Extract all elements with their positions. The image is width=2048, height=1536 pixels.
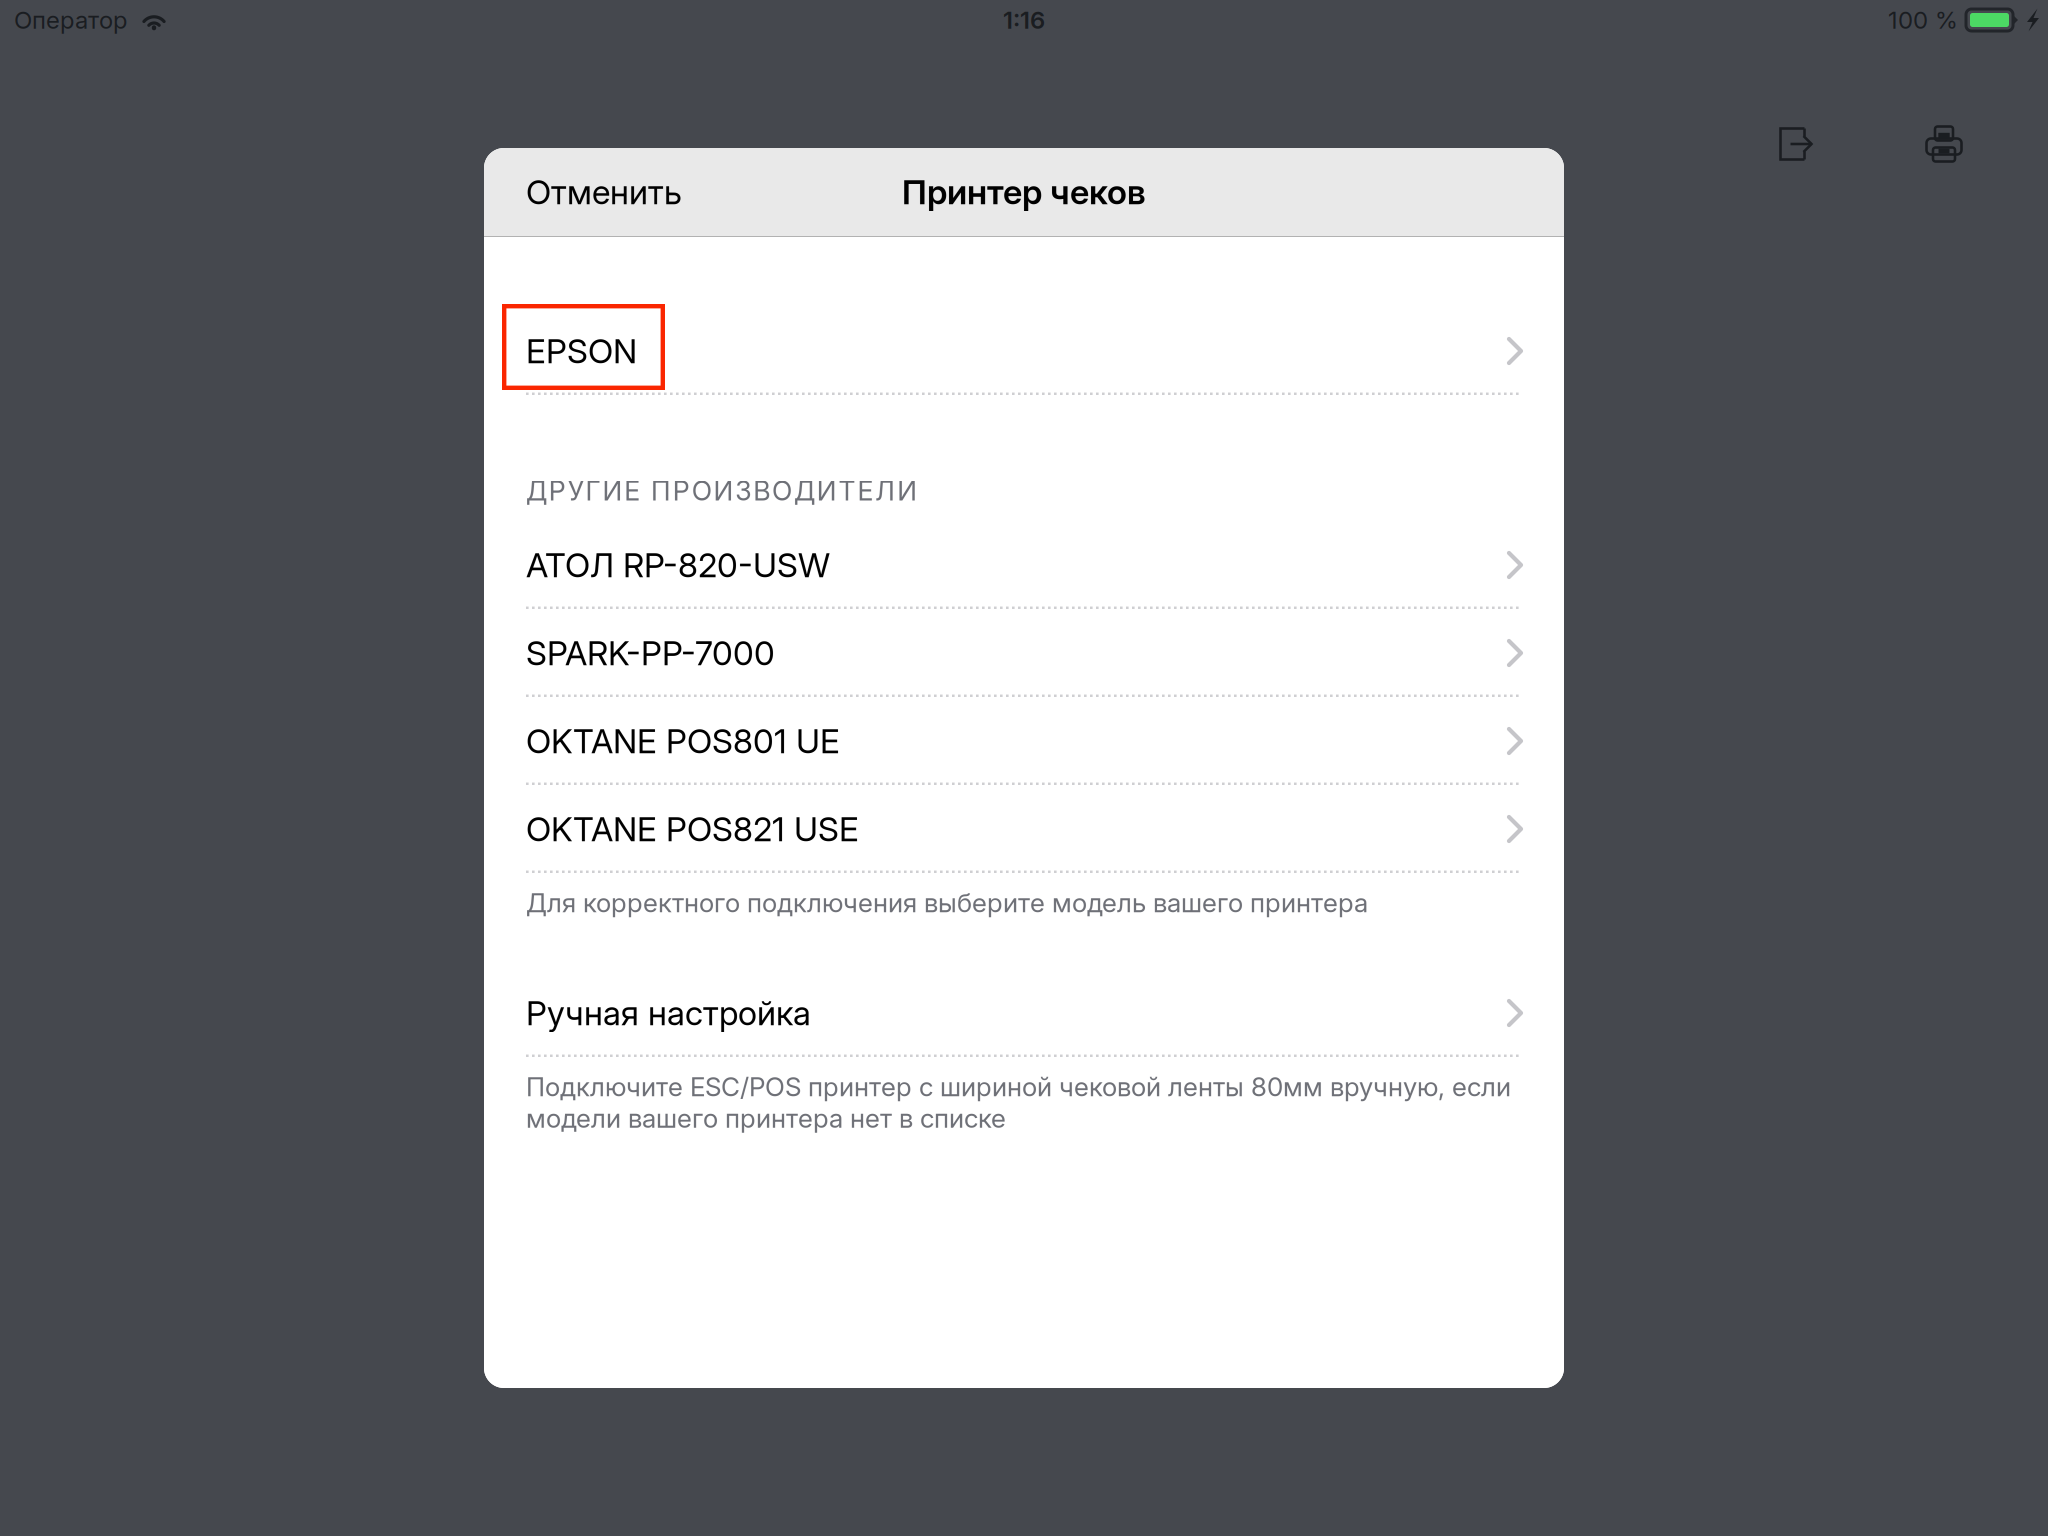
staticText: Принтер чеков: [902, 171, 1146, 212]
button[interactable]: Print: [1873, 100, 2015, 188]
staticText: Отменить: [526, 172, 682, 212]
staticText: 100 %: [1888, 5, 1958, 34]
button[interactable]: Ручная настройка: [484, 969, 1564, 1057]
staticText: SPARK-PP-7000: [526, 633, 775, 673]
staticText: EPSON: [526, 331, 637, 371]
staticText: 1:16: [1003, 5, 1045, 34]
staticText: Ручная настройка: [526, 993, 811, 1033]
staticText: OKTANE POS821 USE: [526, 809, 859, 849]
staticText: ДРУГИЕ ПРОИЗВОДИТЕЛИ: [526, 475, 917, 507]
staticText: Подключите ESC/POS принтер с шириной чек…: [526, 1071, 1511, 1134]
button[interactable]: АТОЛ RP-820-USW: [484, 521, 1564, 609]
staticText: OKTANE POS801 UE: [526, 721, 840, 761]
button[interactable]: EPSON: [484, 307, 1564, 395]
button[interactable]: SPARK-PP-7000: [484, 609, 1564, 697]
staticText: Для корректного подключения выберите мод…: [526, 887, 1368, 918]
button[interactable]: OKTANE POS801 UE: [484, 697, 1564, 785]
staticText: АТОЛ RP-820-USW: [526, 545, 830, 585]
button[interactable]: Отменить: [484, 148, 824, 236]
staticText: Оператор: [14, 5, 127, 34]
button[interactable]: Export: [1719, 100, 1873, 188]
button[interactable]: OKTANE POS821 USE: [484, 785, 1564, 873]
